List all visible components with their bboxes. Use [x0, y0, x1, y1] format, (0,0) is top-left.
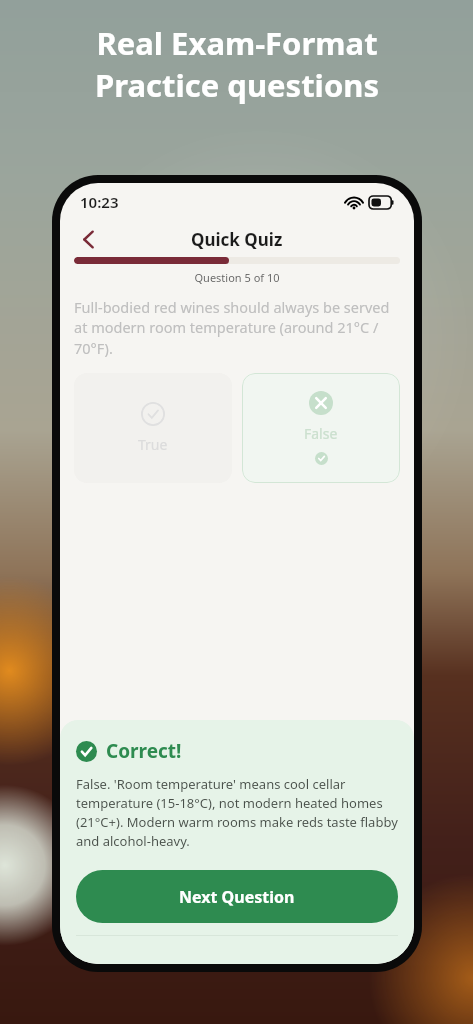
staticText: 10:23	[80, 192, 119, 212]
staticText: Question 5 of 10	[74, 270, 400, 285]
button[interactable]: Back	[68, 221, 108, 257]
button[interactable]: False	[242, 373, 400, 483]
staticText: Real Exam-Format	[96, 22, 378, 64]
button[interactable]: Next Question	[76, 870, 398, 923]
staticText: Practice questions	[95, 64, 379, 106]
staticText: False. 'Room temperature' means cool cel…	[76, 775, 398, 850]
staticText: Full-bodied red wines should always be s…	[74, 297, 400, 359]
staticText: Correct!	[106, 738, 182, 764]
staticText: False	[304, 424, 338, 443]
staticText: Next Question	[179, 886, 295, 908]
staticText: True	[138, 435, 168, 454]
staticText: Quick Quiz	[191, 228, 283, 251]
